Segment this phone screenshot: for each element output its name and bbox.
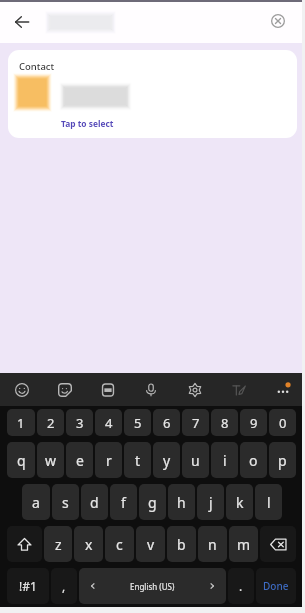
staticText: 8	[221, 414, 229, 432]
button[interactable]: GIF	[86, 373, 129, 406]
staticText: w	[45, 451, 57, 470]
staticText: r	[106, 451, 112, 470]
button[interactable]: g	[139, 484, 166, 520]
staticText: Done	[263, 579, 289, 593]
button[interactable]: w	[37, 442, 64, 478]
button[interactable]: b	[167, 526, 196, 562]
staticText: j	[209, 493, 213, 512]
button[interactable]: f	[110, 484, 137, 520]
button[interactable]: .	[228, 568, 254, 604]
staticText: Contact	[19, 60, 55, 73]
button[interactable]: x	[74, 526, 103, 562]
staticText: .	[239, 578, 243, 594]
button[interactable]: Voice input	[129, 373, 173, 406]
button[interactable]: r	[95, 442, 122, 478]
staticText: Tap to select	[61, 118, 114, 129]
staticText: a	[32, 493, 40, 512]
staticText: e	[76, 451, 84, 470]
button[interactable]: Emoji	[0, 373, 43, 406]
button[interactable]: 4	[95, 409, 122, 436]
button[interactable]: 5	[124, 409, 151, 436]
button[interactable]: ,	[51, 568, 77, 604]
button[interactable]: 1	[7, 409, 35, 436]
staticText: ,	[62, 578, 66, 594]
button[interactable]: More options	[261, 373, 305, 406]
staticText: u	[191, 451, 200, 470]
button[interactable]: a	[22, 484, 50, 520]
staticText: i	[223, 451, 227, 470]
staticText: k	[236, 493, 244, 512]
button[interactable]: j	[197, 484, 224, 520]
button[interactable]: i	[211, 442, 238, 478]
button[interactable]: h	[168, 484, 195, 520]
staticText: 4	[105, 414, 113, 432]
button[interactable]: !#1	[7, 568, 49, 604]
staticText: z	[55, 535, 62, 554]
staticText: 2	[47, 414, 55, 432]
staticText: v	[147, 535, 155, 554]
staticText: English (US)	[130, 581, 175, 592]
staticText: 3	[76, 414, 84, 432]
staticText: g	[148, 493, 157, 512]
staticText: q	[17, 451, 26, 470]
staticText: h	[177, 493, 186, 512]
staticText: 9	[250, 414, 258, 432]
button[interactable]: Handwriting	[217, 373, 261, 406]
button[interactable]: t	[124, 442, 151, 478]
button[interactable]: Settings	[173, 373, 217, 406]
button[interactable]: Shift	[7, 526, 42, 562]
staticText: o	[249, 451, 258, 470]
button[interactable]: e	[66, 442, 93, 478]
button[interactable]: u	[182, 442, 209, 478]
staticText: x	[85, 535, 93, 554]
staticText: t	[135, 451, 141, 470]
button[interactable]: 2	[37, 409, 64, 436]
button[interactable]: q	[7, 442, 35, 478]
button[interactable]: 8	[211, 409, 238, 436]
staticText: c	[116, 535, 123, 554]
button[interactable]: n	[198, 526, 227, 562]
button[interactable]: 9	[240, 409, 267, 436]
staticText: 6	[163, 414, 171, 432]
button[interactable]: v	[136, 526, 165, 562]
button[interactable]: k	[226, 484, 253, 520]
button[interactable]: Space, English (US)	[79, 568, 226, 604]
button[interactable]: Back	[8, 8, 36, 36]
staticText: m	[237, 535, 251, 554]
staticText: 7	[192, 414, 200, 432]
button[interactable]: m	[229, 526, 258, 562]
staticText: b	[177, 535, 186, 554]
button[interactable]: y	[153, 442, 180, 478]
button[interactable]: d	[81, 484, 108, 520]
button[interactable]: Backspace	[260, 526, 296, 562]
button[interactable]: Done	[256, 568, 296, 604]
staticText: !#1	[19, 578, 37, 594]
button[interactable]: Contact	[8, 50, 297, 138]
staticText: n	[208, 535, 217, 554]
button[interactable]: c	[105, 526, 134, 562]
button[interactable]: o	[240, 442, 267, 478]
staticText: 5	[134, 414, 142, 432]
staticText: 1	[17, 414, 25, 432]
button[interactable]: z	[44, 526, 72, 562]
button[interactable]: p	[269, 442, 296, 478]
button[interactable]: s	[52, 484, 79, 520]
staticText: l	[267, 493, 271, 512]
button[interactable]: 0	[269, 409, 296, 436]
button[interactable]: 6	[153, 409, 180, 436]
staticText: y	[163, 451, 171, 470]
staticText: p	[278, 451, 287, 470]
staticText: f	[121, 493, 126, 512]
button[interactable]: 3	[66, 409, 93, 436]
button[interactable]: 7	[182, 409, 209, 436]
staticText: 0	[279, 414, 287, 432]
button[interactable]: Stickers	[43, 373, 86, 406]
button[interactable]: l	[255, 484, 282, 520]
staticText: d	[90, 493, 99, 512]
staticText: s	[62, 493, 69, 512]
button[interactable]: Close	[266, 9, 290, 33]
